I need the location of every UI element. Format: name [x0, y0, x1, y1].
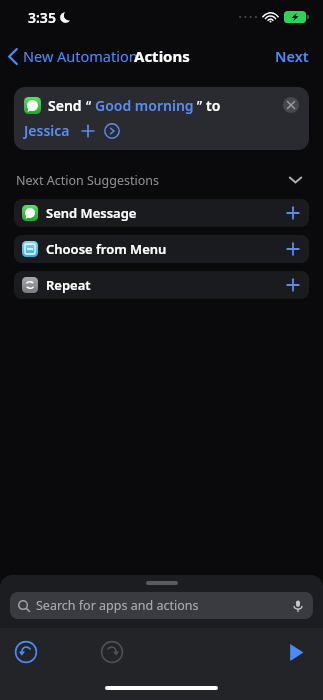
button[interactable]: Repeat: [14, 271, 309, 299]
staticText: to: [206, 96, 221, 115]
button[interactable]: Redo: [100, 640, 124, 664]
button[interactable]: Search for apps and actions: [10, 592, 313, 619]
button[interactable]: Expand details: [104, 123, 120, 139]
staticText: ”: [197, 96, 203, 115]
staticText: Next Action Suggestions: [16, 172, 159, 189]
button[interactable]: Send: [14, 87, 309, 150]
button[interactable]: Next: [261, 40, 323, 72]
button[interactable]: Add Repeat: [285, 277, 301, 293]
button[interactable]: Add Choose from Menu: [285, 241, 301, 257]
staticText: Search for apps and actions: [36, 597, 199, 614]
button[interactable]: Run shortcut: [283, 639, 309, 665]
button[interactable]: Undo: [14, 640, 38, 664]
button[interactable]: Remove action: [283, 97, 299, 113]
staticText: Next: [275, 46, 309, 66]
staticText: Jessica: [24, 121, 70, 140]
staticText: Send Message: [46, 204, 137, 222]
button[interactable]: Send Message: [14, 199, 309, 227]
staticText: Choose from Menu: [46, 240, 167, 258]
button[interactable]: Add Send Message: [285, 205, 301, 221]
staticText: Good morning: [95, 96, 194, 115]
button[interactable]: Choose from Menu: [14, 235, 309, 263]
staticText: Repeat: [46, 276, 91, 294]
staticText: 3:35: [28, 8, 56, 27]
button[interactable]: New Automation: [0, 42, 146, 70]
staticText: Actions: [134, 46, 190, 66]
button[interactable]: Collapse suggestions: [283, 168, 307, 192]
button[interactable]: Add recipient: [80, 123, 96, 139]
staticText: Send: [48, 96, 82, 115]
staticText: “: [86, 96, 92, 115]
staticText: New Automation: [23, 46, 138, 66]
button[interactable]: Voice search: [291, 599, 305, 613]
